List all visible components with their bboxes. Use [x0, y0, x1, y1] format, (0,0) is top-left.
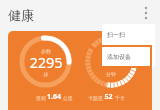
button[interactable]: 步数	[8, 31, 152, 110]
button[interactable]: 添加设备	[101, 46, 151, 67]
staticText: 卡路里	[87, 95, 104, 102]
staticText: 健康	[8, 7, 34, 23]
staticText: 步数	[21, 48, 71, 54]
staticText: 52	[104, 92, 113, 102]
staticText: 1.64	[47, 92, 61, 102]
button[interactable]: More options	[137, 4, 155, 22]
staticText: 分钟	[86, 71, 136, 77]
staticText: 公里	[61, 95, 73, 102]
staticText: 千卡	[113, 95, 125, 102]
staticText: 步	[21, 71, 71, 77]
staticText: 里程	[35, 95, 47, 102]
staticText: 添加设备	[107, 53, 131, 61]
button[interactable]: 扫一扫	[102, 24, 155, 46]
staticText: 2295	[21, 52, 71, 72]
staticText: 扫一扫	[107, 31, 125, 39]
